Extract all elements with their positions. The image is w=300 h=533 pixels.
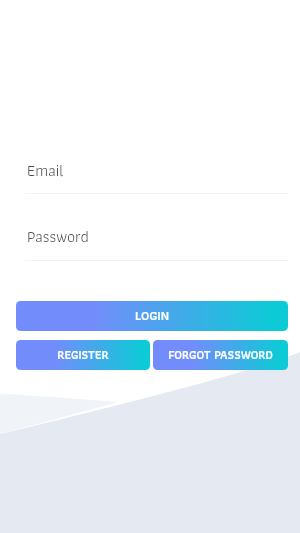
button[interactable]: LOGIN xyxy=(16,301,288,331)
staticText: FORGOT PASSWORD xyxy=(168,345,273,364)
staticText: LOGIN xyxy=(135,305,169,326)
button[interactable]: REGISTER xyxy=(16,340,150,370)
staticText: REGISTER xyxy=(57,345,109,364)
button[interactable]: FORGOT PASSWORD xyxy=(153,340,288,370)
staticText: Email xyxy=(27,158,64,184)
staticText: Password xyxy=(27,224,89,250)
